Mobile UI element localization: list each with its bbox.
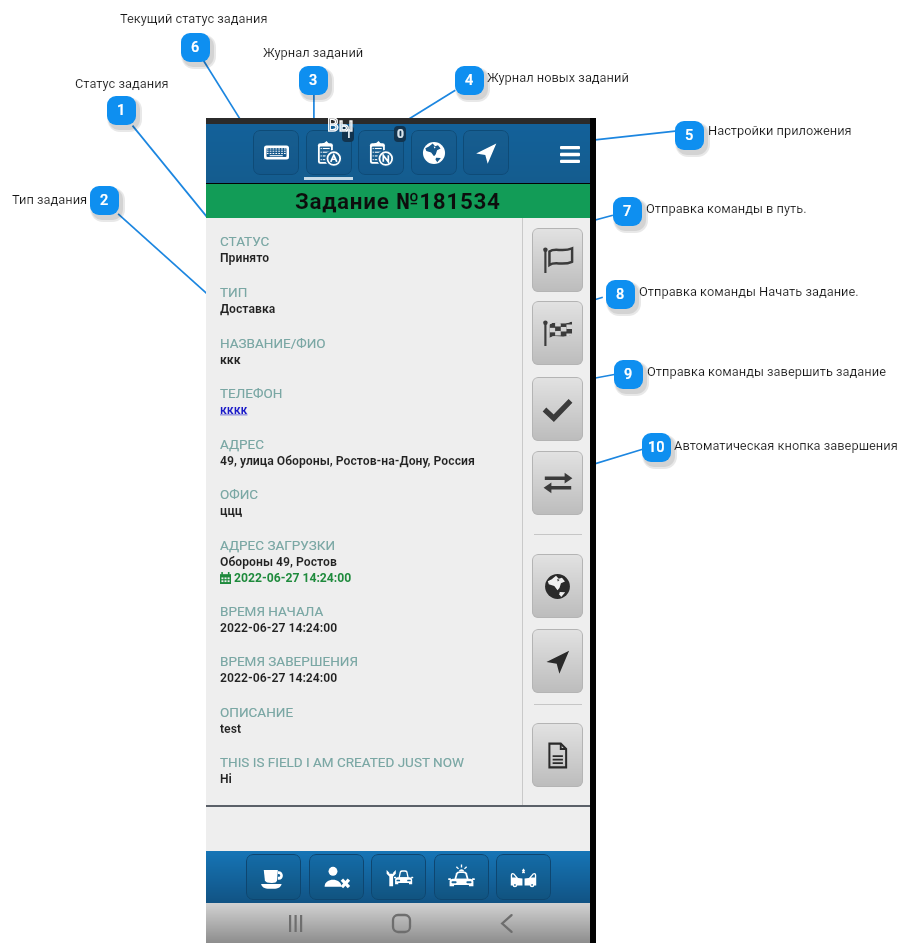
- staticText: Статус задания: [75, 76, 169, 91]
- button[interactable]: ОФИС: [220, 486, 520, 518]
- staticText: Доставка: [220, 302, 276, 316]
- button[interactable]: АДРЕС: [220, 436, 520, 468]
- button[interactable]: callout 6: [181, 33, 210, 62]
- staticText: 8: [616, 286, 625, 303]
- button[interactable]: callout 2: [90, 186, 119, 215]
- button[interactable]: ОПИСАНИЕ: [220, 704, 520, 736]
- staticText: ккк: [220, 353, 241, 367]
- staticText: ццц: [220, 504, 243, 518]
- button[interactable]: callout 7: [613, 197, 642, 226]
- staticText: 7: [623, 203, 632, 220]
- button[interactable]: ВРЕМЯ ЗАВЕРШЕНИЯ: [220, 653, 520, 685]
- staticText: ВРЕМЯ ЗАВЕРШЕНИЯ: [220, 653, 358, 669]
- staticText: 0: [397, 127, 404, 141]
- staticText: 10: [648, 439, 665, 456]
- staticText: Вы: [327, 113, 354, 135]
- button[interactable]: callout 4: [455, 66, 484, 95]
- button[interactable]: Map: [532, 554, 583, 618]
- staticText: Текущий статус задания: [120, 11, 268, 26]
- button[interactable]: Break: [246, 854, 301, 900]
- button[interactable]: Send on the way: [532, 228, 583, 292]
- staticText: кккк: [220, 403, 248, 417]
- button[interactable]: НАЗВАНИЕ/ФИО: [220, 335, 520, 367]
- staticText: ОПИСАНИЕ: [220, 704, 294, 720]
- button[interactable]: New task log: [358, 130, 404, 175]
- staticText: Отправка команды завершить задание: [647, 364, 886, 379]
- button[interactable]: callout 5: [675, 121, 704, 150]
- staticText: test: [220, 722, 242, 736]
- button[interactable]: callout 1: [107, 96, 136, 125]
- button[interactable]: ТЕЛЕФОН: [220, 385, 520, 417]
- staticText: АДРЕС ЗАГРУЗКИ: [220, 537, 336, 553]
- staticText: ВРЕМЯ НАЧАЛА: [220, 603, 324, 619]
- staticText: 49, улица Обороны, Ростов-на-Дону, Росси…: [220, 454, 475, 468]
- staticText: 2022-06-27 14:24:00: [220, 671, 338, 685]
- button[interactable]: callout 10: [642, 433, 671, 462]
- button[interactable]: АДРЕС ЗАГРУЗКИ: [220, 537, 520, 585]
- button[interactable]: ТИП: [220, 284, 520, 316]
- button[interactable]: Home: [382, 912, 420, 934]
- button[interactable]: Map: [411, 130, 457, 175]
- button[interactable]: Police: [434, 854, 489, 900]
- button[interactable]: Settings: [550, 138, 590, 170]
- staticText: Журнал новых заданий: [487, 70, 629, 85]
- button[interactable]: Automatic completion: [532, 451, 583, 515]
- button[interactable]: Repair: [371, 854, 426, 900]
- button[interactable]: Keyboard: [253, 130, 299, 175]
- staticText: 1: [345, 127, 352, 141]
- button[interactable]: Start task: [532, 301, 583, 365]
- staticText: 1: [117, 102, 126, 119]
- button[interactable]: callout 9: [614, 360, 643, 389]
- staticText: Задание №181534: [295, 188, 501, 214]
- staticText: 2: [100, 192, 109, 209]
- staticText: 6: [191, 39, 200, 56]
- button[interactable]: callout 3: [299, 66, 328, 95]
- staticText: ТЕЛЕФОН: [220, 385, 283, 401]
- staticText: Тип задания: [12, 192, 88, 207]
- staticText: 5: [685, 127, 694, 144]
- staticText: 2022-06-27 14:24:00: [234, 571, 352, 585]
- button[interactable]: Back: [488, 912, 526, 934]
- staticText: Hi: [220, 772, 232, 786]
- button[interactable]: Client absent: [309, 854, 364, 900]
- staticText: 2022-06-27 14:24:00: [220, 621, 338, 635]
- button[interactable]: Task log: [306, 130, 352, 175]
- staticText: СТАТУС: [220, 233, 270, 249]
- button[interactable]: Accident: [496, 854, 551, 900]
- staticText: НАЗВАНИЕ/ФИО: [220, 335, 326, 351]
- staticText: АДРЕС: [220, 436, 265, 452]
- staticText: 3: [309, 72, 318, 89]
- button[interactable]: ВРЕМЯ НАЧАЛА: [220, 603, 520, 635]
- button[interactable]: СТАТУС: [220, 233, 520, 265]
- staticText: ОФИС: [220, 486, 259, 502]
- button[interactable]: Documents: [532, 723, 583, 787]
- staticText: Отправка команды в путь.: [646, 201, 807, 216]
- staticText: Настройки приложения: [708, 123, 852, 138]
- staticText: Автоматическая кнопка завершения: [674, 438, 898, 453]
- staticText: Обороны 49, Ростов: [220, 555, 337, 569]
- button[interactable]: callout 8: [606, 280, 635, 309]
- button[interactable]: Complete task: [532, 377, 583, 441]
- staticText: ТИП: [220, 284, 248, 300]
- staticText: Принято: [220, 251, 270, 265]
- staticText: THIS IS FIELD I AM CREATED JUST NOW: [220, 754, 464, 770]
- staticText: Журнал заданий: [263, 45, 364, 60]
- staticText: 4: [465, 72, 474, 89]
- button[interactable]: THIS IS FIELD I AM CREATED JUST NOW: [220, 754, 520, 786]
- staticText: Отправка команды Начать задание.: [639, 284, 859, 299]
- staticText: 9: [624, 366, 633, 383]
- button[interactable]: Navigate: [463, 130, 509, 175]
- button[interactable]: Recents: [278, 913, 314, 933]
- button[interactable]: Navigate: [532, 629, 583, 693]
